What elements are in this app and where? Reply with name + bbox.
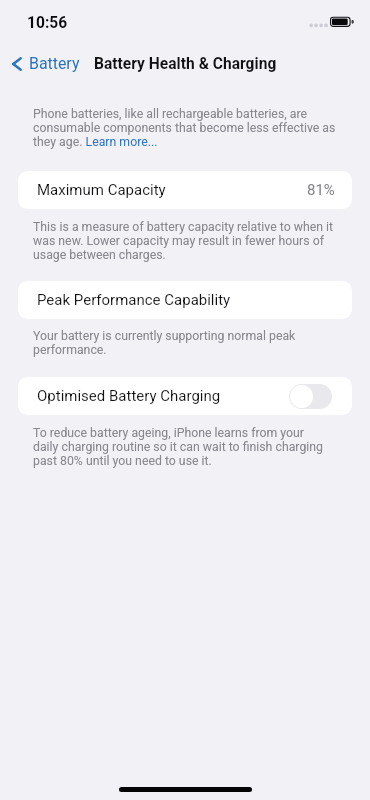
button[interactable]: Battery	[0, 49, 86, 78]
staticText: Maximum Capacity	[37, 181, 166, 199]
button[interactable]: Peak Performance Capability	[18, 281, 352, 319]
staticText: Phone batteries, like all rechargeable b…	[33, 107, 340, 149]
button[interactable]: Optimised Battery Charging	[289, 384, 332, 409]
staticText: This is a measure of battery capacity re…	[33, 220, 340, 262]
staticText: Battery	[29, 54, 80, 73]
button[interactable]: Maximum Capacity	[18, 171, 352, 209]
staticText: 81%	[307, 181, 335, 199]
staticText: Your battery is currently supporting nor…	[33, 329, 340, 357]
staticText: Battery Health & Charging	[94, 55, 277, 73]
staticText: Optimised Battery Charging	[37, 387, 221, 405]
staticText: To reduce battery ageing, iPhone learns …	[33, 426, 331, 468]
staticText: 10:56	[27, 14, 68, 32]
staticText: Peak Performance Capability	[37, 291, 231, 309]
